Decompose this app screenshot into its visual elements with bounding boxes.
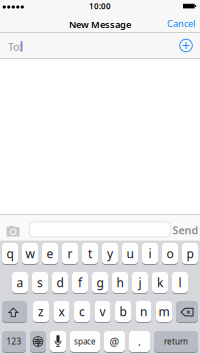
button[interactable]: Camera <box>6 226 19 237</box>
staticText: o <box>166 245 173 261</box>
staticText: n <box>140 303 147 319</box>
staticText: Cancel <box>167 17 195 30</box>
button[interactable]: Dictate <box>50 330 66 352</box>
button[interactable]: u <box>122 242 138 264</box>
staticText: i <box>148 245 151 261</box>
staticText: New Message <box>69 18 131 31</box>
button[interactable]: g <box>92 271 108 293</box>
staticText: q <box>6 245 13 261</box>
button[interactable]: c <box>74 300 90 322</box>
button[interactable]: Send <box>172 223 198 237</box>
button[interactable]: v <box>94 300 110 322</box>
button[interactable]: return <box>154 330 198 352</box>
staticText: Send <box>172 223 198 237</box>
button[interactable]: l <box>172 271 188 293</box>
button[interactable]: q <box>2 242 18 264</box>
button[interactable]: z <box>33 300 49 322</box>
staticText: To: <box>8 39 22 54</box>
button[interactable]: Delete <box>176 300 198 322</box>
staticText: 123 <box>6 336 21 347</box>
staticText: t <box>88 245 92 261</box>
button[interactable]: i <box>142 242 158 264</box>
button[interactable]: t <box>82 242 98 264</box>
button[interactable]: b <box>115 300 131 322</box>
button[interactable]: Next keyboard <box>30 330 46 352</box>
staticText: v <box>99 303 105 319</box>
staticText: y <box>107 245 113 261</box>
button[interactable]: . <box>129 330 150 352</box>
staticText: . <box>138 334 141 349</box>
staticText: e <box>46 245 53 261</box>
staticText: w <box>25 245 34 261</box>
button[interactable]: y <box>102 242 118 264</box>
staticText: f <box>78 274 82 290</box>
button[interactable]: p <box>182 242 198 264</box>
button[interactable]: 123 <box>2 330 26 352</box>
button[interactable]: space <box>70 330 100 352</box>
staticText: space <box>74 336 96 347</box>
staticText: k <box>157 274 163 290</box>
button[interactable]: s <box>32 271 48 293</box>
staticText: g <box>96 274 103 290</box>
staticText: 10:00 <box>89 1 111 11</box>
staticText: z <box>38 303 44 319</box>
button[interactable]: r <box>62 242 78 264</box>
button[interactable]: o <box>162 242 178 264</box>
staticText: c <box>79 303 85 319</box>
button[interactable]: k <box>152 271 168 293</box>
button[interactable]: e <box>42 242 58 264</box>
staticText: l <box>178 274 181 290</box>
button[interactable]: f <box>72 271 88 293</box>
button[interactable]: n <box>135 300 151 322</box>
button[interactable]: Cancel <box>167 17 195 30</box>
button[interactable]: m <box>156 300 172 322</box>
staticText: p <box>186 245 193 261</box>
button[interactable]: h <box>112 271 128 293</box>
button[interactable]: d <box>52 271 68 293</box>
staticText: x <box>58 303 64 319</box>
button[interactable]: j <box>132 271 148 293</box>
button[interactable]: Shift <box>2 300 27 322</box>
staticText: d <box>56 274 63 290</box>
button[interactable]: @ <box>104 330 125 352</box>
staticText: s <box>37 274 43 290</box>
staticText: r <box>67 245 72 261</box>
staticText: b <box>119 303 126 319</box>
staticText: return <box>164 336 188 347</box>
staticText: u <box>126 245 133 261</box>
staticText: h <box>116 274 123 290</box>
staticText: m <box>158 303 169 319</box>
staticText: @ <box>109 334 119 349</box>
staticText: a <box>16 274 23 290</box>
button[interactable]: Add Contact <box>179 38 193 53</box>
button[interactable]: w <box>22 242 38 264</box>
staticText: j <box>138 274 141 290</box>
button[interactable]: a <box>12 271 28 293</box>
button[interactable]: x <box>53 300 69 322</box>
